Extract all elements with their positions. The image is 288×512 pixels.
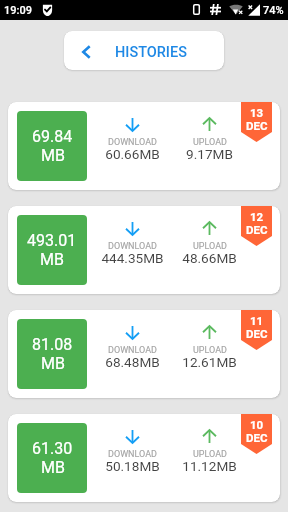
staticText: 493.01 bbox=[27, 231, 77, 250]
button[interactable]: Back bbox=[64, 31, 224, 70]
staticText: 69.84 bbox=[32, 127, 73, 146]
staticText: DEC bbox=[246, 119, 268, 132]
button[interactable]: 81.08 bbox=[8, 310, 280, 398]
staticText: DOWNLOAD bbox=[108, 241, 157, 252]
staticText: DOWNLOAD bbox=[108, 345, 157, 356]
staticText: MB bbox=[41, 458, 65, 477]
staticText: 13 bbox=[250, 106, 264, 119]
staticText: UPLOAD bbox=[193, 137, 227, 148]
staticText: UPLOAD bbox=[193, 241, 227, 252]
staticText: 10 bbox=[250, 418, 264, 431]
staticText: 50.18MB bbox=[105, 458, 160, 474]
staticText: 74% bbox=[263, 4, 284, 17]
staticText: 68.48MB bbox=[105, 354, 160, 370]
staticText: DOWNLOAD bbox=[108, 449, 157, 460]
staticText: 61.30 bbox=[32, 439, 73, 458]
staticText: 19:09 bbox=[4, 4, 32, 17]
button[interactable]: 69.84 bbox=[8, 102, 280, 190]
staticText: 60.66MB bbox=[105, 146, 160, 162]
staticText: DEC bbox=[246, 327, 268, 340]
staticText: 48.66MB bbox=[182, 250, 237, 266]
staticText: DOWNLOAD bbox=[108, 137, 157, 148]
staticText: MB bbox=[41, 146, 65, 165]
staticText: DEC bbox=[246, 431, 268, 444]
staticText: 444.35MB bbox=[101, 250, 164, 266]
staticText: 9.17MB bbox=[186, 146, 233, 162]
staticText: UPLOAD bbox=[193, 345, 227, 356]
staticText: UPLOAD bbox=[193, 449, 227, 460]
button[interactable]: 61.30 bbox=[8, 414, 280, 502]
staticText: MB bbox=[40, 250, 64, 269]
staticText: MB bbox=[41, 354, 65, 373]
staticText: 12 bbox=[250, 210, 264, 223]
other: Back bbox=[82, 45, 91, 59]
staticText: 11.12MB bbox=[182, 458, 237, 474]
button[interactable]: 493.01 bbox=[8, 206, 280, 294]
staticText: 12.61MB bbox=[182, 354, 237, 370]
staticText: DEC bbox=[246, 223, 268, 236]
staticText: 81.08 bbox=[32, 335, 73, 354]
staticText: HISTORIES bbox=[115, 44, 187, 61]
staticText: 11 bbox=[250, 314, 264, 327]
